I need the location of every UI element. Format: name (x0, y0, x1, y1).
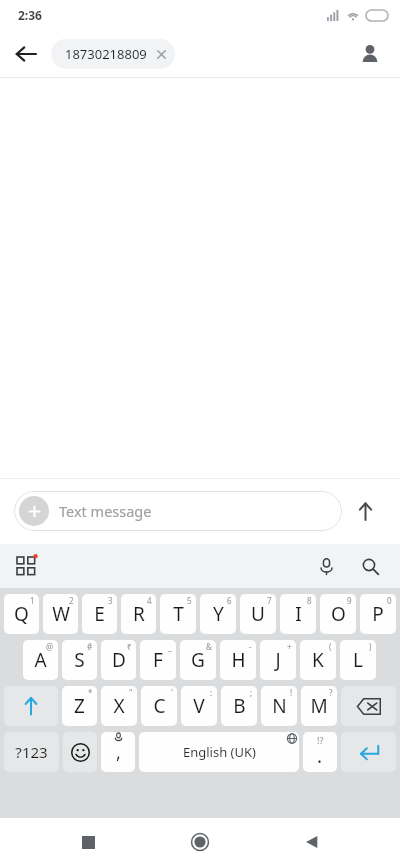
staticText: 3 (108, 595, 113, 606)
staticText: V (193, 693, 205, 719)
staticText: 0 (387, 595, 392, 606)
staticText: C (153, 693, 166, 719)
staticText: 2:36 (18, 7, 42, 23)
staticText: 1 (30, 595, 35, 606)
staticText: D (112, 647, 126, 673)
button[interactable]: U (240, 594, 276, 634)
staticText: !? (317, 734, 324, 746)
staticText: ( (329, 641, 332, 652)
staticText: 4 (147, 595, 152, 606)
staticText: - (249, 641, 252, 652)
staticText: 2 (69, 595, 74, 606)
button[interactable]: P (360, 594, 396, 634)
staticText: S (74, 647, 85, 673)
button[interactable]: D (101, 640, 136, 680)
button[interactable]: Y (200, 594, 236, 634)
staticText: 9 (347, 595, 352, 606)
button[interactable]: 18730218809 (51, 39, 175, 69)
button[interactable]: F (140, 640, 176, 680)
staticText: O (331, 601, 346, 627)
staticText: H (231, 647, 246, 673)
button[interactable]: ?123 (4, 732, 59, 772)
staticText: ₹ (127, 641, 132, 652)
button[interactable]: Recents (64, 818, 112, 866)
staticText: J (275, 647, 281, 673)
button[interactable]: R (121, 594, 156, 634)
button[interactable]: A (23, 640, 58, 680)
staticText: F (153, 647, 163, 673)
staticText: + (287, 641, 292, 652)
staticText: W (52, 601, 70, 627)
button[interactable]: Back (6, 34, 46, 74)
button[interactable]: S (62, 640, 97, 680)
button[interactable]: X (101, 686, 137, 726)
button[interactable]: N (261, 686, 297, 726)
staticText: : (210, 687, 213, 698)
button[interactable] (341, 732, 396, 772)
staticText: G (191, 647, 205, 673)
staticText: 6 (227, 595, 232, 606)
button[interactable]: Contact details (350, 34, 390, 74)
button[interactable] (4, 686, 58, 726)
staticText: ?123 (15, 742, 48, 762)
staticText: , (116, 740, 121, 765)
staticText: 8 (307, 595, 312, 606)
staticText: B (233, 693, 246, 719)
button[interactable]: E (82, 594, 117, 634)
staticText: L (353, 647, 363, 673)
staticText: N (272, 693, 287, 719)
button[interactable]: K (300, 640, 336, 680)
staticText: English (UK) (183, 743, 256, 761)
button[interactable]: I (280, 594, 316, 634)
staticText: 5 (187, 595, 192, 606)
staticText: . (317, 743, 323, 769)
button[interactable]: O (320, 594, 356, 634)
staticText: 7 (267, 595, 272, 606)
staticText: 18730218809 (65, 45, 147, 63)
button[interactable]: Back (288, 818, 336, 866)
button[interactable]: L (340, 640, 376, 680)
staticText: I (295, 601, 302, 627)
button[interactable]: H (220, 640, 256, 680)
button[interactable]: , (101, 732, 135, 772)
staticText: R (133, 601, 145, 627)
button[interactable]: T (160, 594, 196, 634)
staticText: Y (213, 601, 224, 627)
staticText: Z (74, 693, 85, 719)
staticText: X (113, 693, 125, 719)
button[interactable]: Z (62, 686, 97, 726)
staticText: P (372, 601, 384, 627)
staticText: A (34, 647, 47, 673)
button[interactable]: Send (342, 488, 388, 534)
button[interactable]: . (303, 732, 337, 772)
button[interactable]: M (301, 686, 337, 726)
staticText: ? (329, 687, 333, 698)
button[interactable]: J (260, 640, 296, 680)
staticText: ' (171, 687, 173, 698)
button[interactable]: Toolbar (8, 548, 44, 584)
staticText: & (206, 641, 212, 652)
button[interactable]: Q (4, 594, 39, 634)
button[interactable]: V (181, 686, 217, 726)
staticText: U (251, 601, 265, 627)
button[interactable]: English (UK) (139, 732, 299, 772)
button[interactable]: Voice input (308, 548, 344, 584)
staticText: Q (14, 601, 29, 627)
staticText: ! (290, 687, 293, 698)
button[interactable]: Search (352, 548, 388, 584)
staticText: ) (369, 641, 372, 652)
button[interactable]: Text message (14, 491, 342, 531)
staticText: # (87, 641, 93, 652)
staticText: E (94, 601, 105, 627)
button[interactable]: G (180, 640, 216, 680)
staticText: K (312, 647, 324, 673)
button[interactable]: C (141, 686, 177, 726)
button[interactable] (341, 686, 396, 726)
staticText: ; (250, 687, 253, 698)
staticText: " (129, 687, 133, 698)
staticText: * (88, 687, 93, 698)
button[interactable]: Home (176, 818, 224, 866)
button[interactable]: B (221, 686, 257, 726)
button[interactable]: W (43, 594, 78, 634)
button[interactable] (63, 732, 97, 772)
